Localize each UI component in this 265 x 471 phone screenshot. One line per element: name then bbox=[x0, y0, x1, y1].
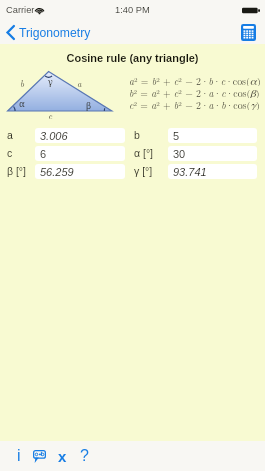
staticText: c² = a² + b² − 2·a·b·cos(γ) bbox=[129, 98, 260, 110]
staticText: a bbox=[77, 77, 82, 90]
staticText: c bbox=[48, 109, 53, 122]
button[interactable]: Help bbox=[76, 445, 92, 467]
staticText: α [°] bbox=[134, 147, 154, 159]
staticText: 1:40 PM bbox=[115, 5, 150, 15]
staticText: 6 bbox=[40, 148, 47, 160]
staticText: b bbox=[134, 129, 140, 141]
button[interactable]: 3.006 bbox=[35, 128, 125, 143]
staticText: Trigonometry bbox=[19, 26, 91, 40]
staticText: γ bbox=[48, 75, 53, 87]
staticText: 3.006 bbox=[40, 130, 68, 142]
staticText: a bbox=[7, 129, 13, 141]
staticText: x bbox=[58, 448, 67, 465]
button[interactable]: Trigonometry bbox=[0, 25, 99, 40]
button[interactable]: Formula bbox=[31, 446, 48, 466]
button[interactable]: 93.741 bbox=[168, 164, 257, 179]
button[interactable]: 30 bbox=[168, 146, 257, 161]
staticText: 56.259 bbox=[40, 166, 74, 178]
staticText: Cosine rule (any triangle) bbox=[0, 52, 265, 64]
button[interactable]: Info bbox=[11, 445, 27, 467]
staticText: ? bbox=[80, 447, 89, 465]
staticText: γ [°] bbox=[134, 165, 153, 177]
button[interactable]: 5 bbox=[168, 128, 257, 143]
button[interactable]: 6 bbox=[35, 146, 125, 161]
button[interactable]: 56.259 bbox=[35, 164, 125, 179]
staticText: 93.741 bbox=[173, 166, 207, 178]
staticText: b bbox=[20, 77, 25, 90]
staticText: β bbox=[86, 99, 92, 111]
staticText: b² = a² + c² − 2·a·c·cos(β) bbox=[129, 86, 260, 98]
staticText: a² = b² + c² − 2·b·c·cos(α) bbox=[129, 74, 261, 86]
staticText: 5 bbox=[173, 130, 180, 142]
staticText: α bbox=[19, 97, 25, 109]
staticText: Carrier bbox=[6, 5, 35, 15]
button[interactable]: Calculator bbox=[232, 24, 265, 41]
staticText: c bbox=[7, 147, 13, 159]
button[interactable]: Clear bbox=[54, 445, 70, 467]
staticText: i bbox=[17, 447, 21, 465]
staticText: β [°] bbox=[7, 165, 26, 177]
staticText: 30 bbox=[173, 148, 186, 160]
